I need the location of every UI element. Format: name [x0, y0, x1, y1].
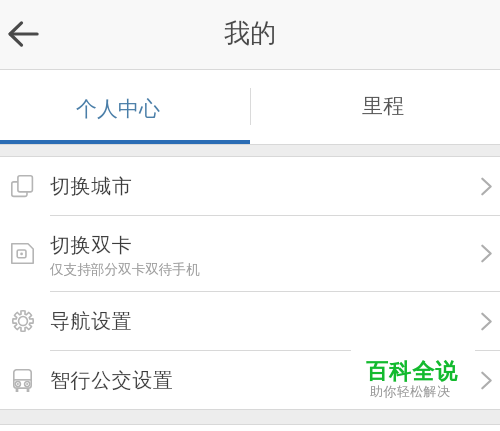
- staticText: 里程: [362, 93, 404, 119]
- button[interactable]: Back: [1, 12, 45, 56]
- staticText: 我的: [224, 17, 276, 50]
- staticText: 智行公交设置: [50, 368, 174, 393]
- button[interactable]: 智行公交设置: [0, 351, 500, 409]
- staticText: 导航设置: [50, 309, 133, 334]
- staticText: 切换城市: [50, 174, 133, 199]
- button[interactable]: 导航设置: [0, 292, 500, 350]
- button[interactable]: 里程: [250, 70, 500, 144]
- button[interactable]: 切换双卡: [0, 216, 500, 291]
- button[interactable]: 个人中心: [0, 70, 250, 144]
- staticText: 助你轻松解决: [370, 383, 451, 399]
- staticText: 个人中心: [76, 96, 160, 122]
- button[interactable]: 切换城市: [0, 157, 500, 215]
- staticText: 仅支持部分双卡双待手机: [50, 261, 200, 278]
- staticText: 切换双卡: [50, 233, 133, 258]
- staticText: 百科全说: [366, 358, 459, 386]
